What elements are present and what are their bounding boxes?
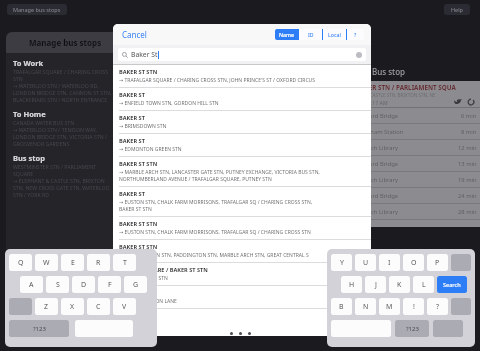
button[interactable]: Refresh: [467, 98, 475, 106]
staticText: ?: [354, 31, 357, 38]
button[interactable]: P: [427, 254, 448, 271]
button[interactable]: S: [46, 276, 69, 293]
button[interactable]: G: [124, 276, 147, 293]
button[interactable]: Share on Twitter: [454, 98, 462, 106]
button[interactable]: ?: [347, 29, 364, 40]
button[interactable]: B: [331, 298, 352, 315]
button[interactable]: X: [61, 298, 84, 315]
button[interactable]: BAKER ST: [113, 187, 371, 216]
button[interactable]: BAKER ST STN: [113, 65, 371, 87]
staticText: W: [43, 258, 50, 268]
button[interactable]: tford Bridge: [362, 108, 480, 123]
button[interactable]: D: [72, 276, 95, 293]
staticText: STN: [13, 75, 23, 82]
button[interactable]: N: [355, 298, 376, 315]
button[interactable]: ID: [299, 29, 322, 40]
staticText: BAKER ST: [119, 289, 145, 297]
button[interactable]: BAKER ST STN: [113, 240, 371, 262]
button[interactable]: V: [113, 298, 136, 315]
button[interactable]: Backspace: [451, 254, 471, 271]
button[interactable]: ?123: [9, 320, 69, 337]
staticText: Add new bus stop: [63, 251, 119, 260]
button[interactable]: T: [113, 254, 136, 271]
button[interactable]: Y: [331, 254, 352, 271]
staticText: BAKER ST STN: [119, 68, 158, 76]
staticText: V: [122, 302, 127, 312]
button[interactable]: Help: [444, 4, 470, 15]
button[interactable]: Manage bus stops: [7, 4, 67, 15]
button[interactable]: BAKER ST STN: [113, 217, 371, 239]
button[interactable]: ?: [427, 298, 448, 315]
staticText: K: [397, 280, 402, 290]
button[interactable]: Z: [35, 298, 58, 315]
button[interactable]: Local: [323, 29, 346, 40]
button[interactable]: tford Bridge: [362, 188, 480, 203]
staticText: → BRIMSDOWN STN: [119, 123, 167, 130]
button[interactable]: F: [98, 276, 121, 293]
button[interactable]: Baker St: [118, 48, 366, 61]
staticText: Local: [328, 31, 341, 38]
button[interactable]: BAKER ST: [113, 111, 371, 133]
button[interactable]: R: [87, 254, 110, 271]
staticText: F: [108, 280, 112, 290]
button[interactable]: H: [341, 276, 362, 293]
staticText: X: [70, 302, 75, 312]
button[interactable]: U: [355, 254, 376, 271]
button[interactable]: O: [403, 254, 424, 271]
staticText: Q: [18, 258, 24, 268]
staticText: ?123: [406, 325, 419, 333]
button[interactable]: Add new bus stop: [63, 251, 119, 260]
staticText: To Home: [13, 109, 46, 119]
button[interactable]: C: [87, 298, 110, 315]
button[interactable]: Bus stop: [13, 153, 110, 198]
button[interactable]: wich Library: [362, 172, 480, 187]
staticText: BAKER ST STN: [119, 160, 158, 168]
staticText: BAKER ST STN: [119, 243, 158, 251]
staticText: I: [388, 258, 391, 268]
staticText: M: [386, 302, 393, 312]
button[interactable]: L: [413, 276, 434, 293]
button[interactable]: wich Library: [362, 140, 480, 155]
button[interactable]: A: [20, 276, 43, 293]
button[interactable]: BAKER ST: [113, 134, 371, 156]
button[interactable]: BAKER ST: [113, 286, 371, 308]
button[interactable]: W: [35, 254, 58, 271]
staticText: Manage bus stops: [13, 6, 61, 13]
staticText: E: [71, 258, 75, 268]
button[interactable]: BAKER ST STN: [113, 157, 371, 186]
staticText: → WATERLOO STN / WATERLOO RD,: [13, 82, 99, 89]
button[interactable]: !: [403, 298, 424, 315]
button[interactable]: Name: [275, 29, 298, 40]
button[interactable]: E: [61, 254, 84, 271]
button[interactable]: wich Library: [362, 204, 480, 219]
button[interactable]: BAKER ST: [113, 88, 371, 110]
button[interactable]: DORSET SQUARE / BAKER ST STN: [113, 263, 371, 285]
button[interactable]: atham Station: [362, 124, 480, 139]
button[interactable]: Shift: [451, 298, 471, 315]
button[interactable]: I: [379, 254, 400, 271]
staticText: → EUSTON STN, CHALK FARM MORRISONS, TRAF…: [119, 229, 311, 236]
staticText: 10:17 AM: [365, 99, 388, 106]
staticText: Help: [451, 6, 463, 13]
button[interactable]: Clear text: [356, 52, 362, 58]
button[interactable]: Search: [437, 276, 467, 293]
button[interactable]: M: [379, 298, 400, 315]
staticText: BAKER ST: [119, 114, 145, 122]
button[interactable]: K: [389, 276, 410, 293]
button[interactable]: ?123: [395, 320, 429, 337]
staticText: J: [375, 280, 377, 290]
button[interactable]: J: [365, 276, 386, 293]
button[interactable]: Shift: [9, 298, 32, 315]
button[interactable]: To Home: [13, 109, 107, 147]
staticText: → ELEPHANT & CASTLE STN, BRIXTON: [13, 177, 105, 184]
staticText: → MARBLE ARCH STN, LANCASTER GATE STN, P…: [119, 169, 320, 183]
staticText: BAKER ST: [119, 190, 145, 198]
staticText: O: [411, 258, 417, 268]
button[interactable]: Q: [9, 254, 32, 271]
button[interactable]: Cancel: [120, 27, 149, 42]
button[interactable]: tford Bridge: [362, 156, 480, 171]
button[interactable]: To Work: [13, 58, 112, 103]
